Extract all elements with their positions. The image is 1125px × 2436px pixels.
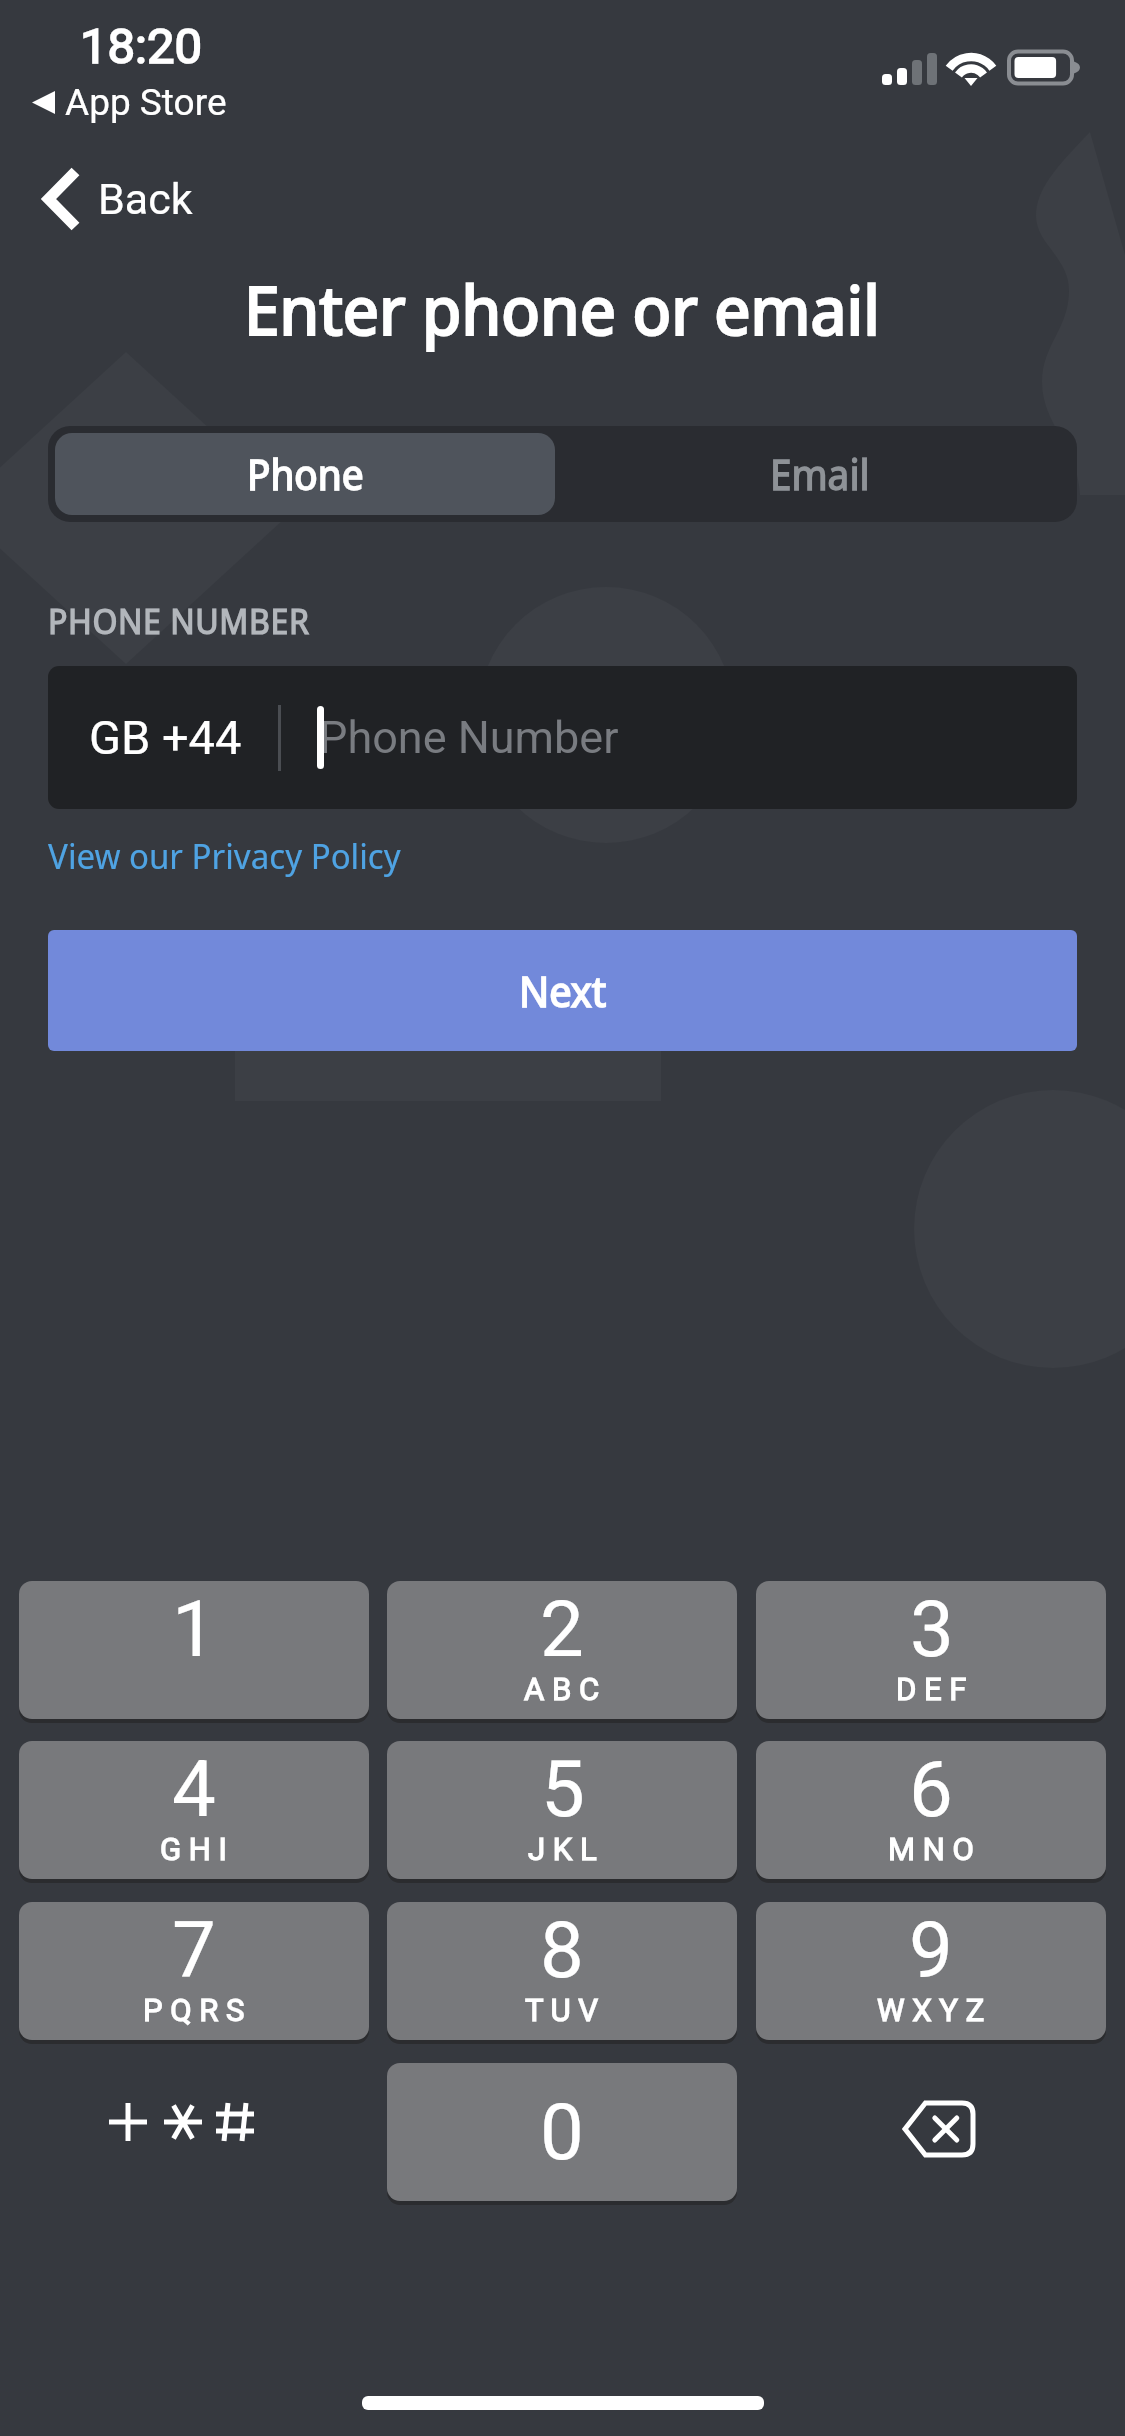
- button[interactable]: 9: [756, 1902, 1106, 2040]
- staticText: 0: [540, 2087, 584, 2178]
- button[interactable]: 6: [756, 1741, 1106, 1879]
- staticText: 9: [909, 1905, 953, 1996]
- staticText: App Store: [65, 81, 227, 124]
- button[interactable]: Plus, star, hash: [19, 2063, 369, 2201]
- staticText: PHONE NUMBER: [48, 598, 310, 644]
- staticText: 3: [910, 1584, 954, 1675]
- button[interactable]: Email: [562, 426, 1077, 522]
- staticText: W X Y Z: [877, 1992, 985, 2028]
- button[interactable]: 0: [387, 2063, 737, 2201]
- staticText: 1: [172, 1584, 216, 1675]
- staticText: A B C: [524, 1671, 600, 1707]
- staticText: D E F: [896, 1671, 967, 1707]
- button[interactable]: App Store: [32, 81, 227, 124]
- button[interactable]: 7: [19, 1902, 369, 2040]
- staticText: Back: [98, 174, 193, 224]
- button[interactable]: 4: [19, 1741, 369, 1879]
- staticText: 6: [909, 1744, 953, 1835]
- staticText: Phone Number: [319, 711, 619, 764]
- staticText: J K L: [528, 1831, 597, 1867]
- staticText: 7: [172, 1905, 216, 1996]
- button[interactable]: 3: [756, 1581, 1106, 1719]
- button[interactable]: Phone: [55, 433, 555, 515]
- button[interactable]: Back: [43, 160, 193, 238]
- staticText: Phone: [247, 446, 364, 502]
- button[interactable]: 2: [387, 1581, 737, 1719]
- staticText: Email: [770, 446, 870, 502]
- button[interactable]: 1: [19, 1581, 369, 1719]
- staticText: Enter phone or email: [244, 262, 881, 355]
- button[interactable]: 5: [387, 1741, 737, 1879]
- staticText: GB +44: [89, 710, 242, 765]
- staticText: 2: [540, 1584, 584, 1675]
- button[interactable]: View our Privacy Policy: [48, 832, 401, 880]
- staticText: G H I: [160, 1831, 228, 1867]
- staticText: T U V: [525, 1992, 599, 2028]
- staticText: M N O: [888, 1831, 974, 1867]
- button[interactable]: 8: [387, 1902, 737, 2040]
- staticText: 5: [541, 1744, 585, 1835]
- button[interactable]: Next: [48, 930, 1077, 1051]
- staticText: 8: [540, 1905, 584, 1996]
- button[interactable]: Delete: [756, 2063, 1106, 2201]
- staticText: P Q R S: [143, 1992, 245, 2028]
- staticText: 18:20: [80, 18, 203, 75]
- button[interactable]: GB +44: [48, 666, 1077, 809]
- staticText: 4: [172, 1744, 216, 1835]
- staticText: Next: [519, 962, 607, 1019]
